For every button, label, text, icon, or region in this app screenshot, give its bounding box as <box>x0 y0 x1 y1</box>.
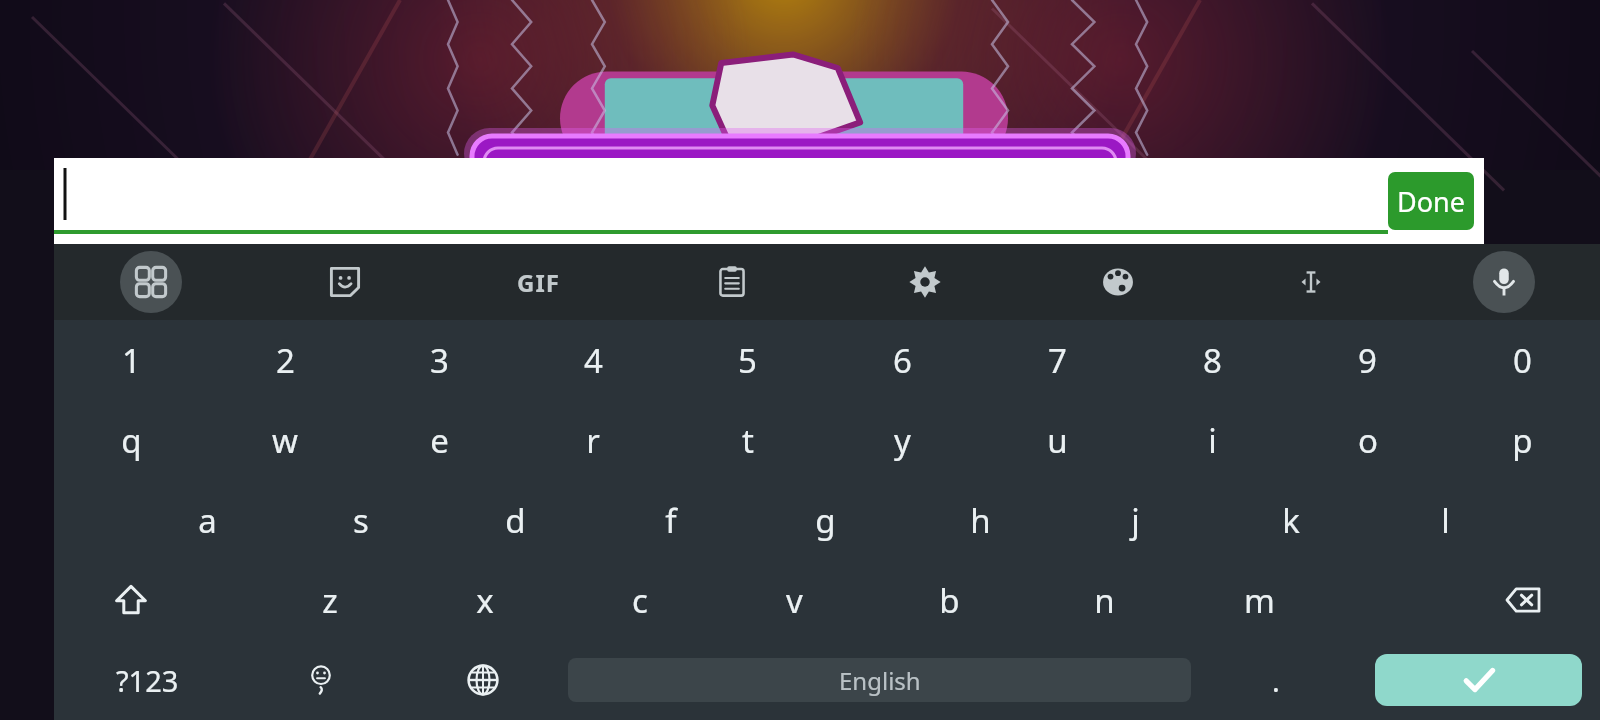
button[interactable]: 7 <box>980 320 1135 400</box>
button[interactable]: w <box>208 400 362 480</box>
button[interactable] <box>54 158 1388 244</box>
button[interactable]: s <box>284 480 438 560</box>
button[interactable]: r <box>516 400 670 480</box>
staticText: q <box>121 418 142 463</box>
button[interactable]: d <box>438 480 593 560</box>
staticText: 1 <box>122 338 141 383</box>
button[interactable]: 5 <box>670 320 825 400</box>
staticText: e <box>430 418 449 463</box>
button[interactable]: Themes <box>1021 244 1214 320</box>
staticText: r <box>586 418 600 463</box>
button[interactable]: Emoji <box>240 640 402 720</box>
staticText: GIF <box>517 266 560 299</box>
staticText: k <box>1282 498 1300 543</box>
button[interactable]: t <box>670 400 825 480</box>
staticText: 7 <box>1048 338 1067 383</box>
button[interactable]: i <box>1135 400 1290 480</box>
button[interactable]: Clipboard <box>635 244 828 320</box>
staticText: j <box>1131 498 1140 543</box>
staticText: . <box>1272 661 1280 700</box>
staticText: p <box>1512 418 1533 463</box>
staticText: d <box>505 498 526 543</box>
staticText: x <box>476 578 494 623</box>
button[interactable]: . <box>1195 640 1357 720</box>
button[interactable]: 4 <box>516 320 670 400</box>
staticText: 0 <box>1513 338 1532 383</box>
button[interactable]: ?123 <box>54 640 240 720</box>
button[interactable]: Apps <box>54 244 248 320</box>
button[interactable]: Voice input <box>1407 244 1600 320</box>
button[interactable]: 3 <box>362 320 516 400</box>
button[interactable]: Stickers <box>248 244 442 320</box>
button[interactable]: g <box>748 480 903 560</box>
button[interactable]: x <box>407 560 562 640</box>
button[interactable]: v <box>717 560 872 640</box>
button[interactable]: 8 <box>1135 320 1290 400</box>
staticText: u <box>1047 418 1068 463</box>
button[interactable]: Enter <box>1375 654 1582 706</box>
button[interactable]: f <box>593 480 748 560</box>
staticText: English <box>839 664 921 697</box>
staticText: 9 <box>1358 338 1377 383</box>
button[interactable]: English <box>568 658 1191 702</box>
staticText: t <box>742 418 754 463</box>
staticText: g <box>815 498 836 543</box>
button[interactable]: 1 <box>54 320 208 400</box>
staticText: v <box>786 578 803 623</box>
button[interactable]: c <box>562 560 717 640</box>
staticText: 2 <box>276 338 295 383</box>
staticText: b <box>939 578 960 623</box>
button[interactable]: Shift <box>54 560 208 640</box>
staticText: a <box>198 498 217 543</box>
button[interactable]: j <box>1058 480 1213 560</box>
button[interactable]: a <box>130 480 284 560</box>
button[interactable]: m <box>1182 560 1337 640</box>
staticText: Done <box>1397 183 1465 220</box>
button[interactable]: k <box>1213 480 1368 560</box>
button[interactable]: 6 <box>825 320 980 400</box>
staticText: w <box>272 418 298 463</box>
button[interactable]: o <box>1290 400 1445 480</box>
staticText: s <box>353 498 369 543</box>
button[interactable]: Text editing <box>1214 244 1407 320</box>
staticText: 8 <box>1203 338 1222 383</box>
button[interactable]: GIF <box>442 244 635 320</box>
button[interactable]: b <box>872 560 1027 640</box>
staticText: 6 <box>893 338 912 383</box>
button[interactable]: z <box>253 560 407 640</box>
staticText: l <box>1441 498 1450 543</box>
staticText: z <box>322 578 338 623</box>
button[interactable]: p <box>1445 400 1600 480</box>
button[interactable]: h <box>903 480 1058 560</box>
staticText: h <box>970 498 991 543</box>
staticText: 3 <box>430 338 449 383</box>
staticText: 4 <box>584 338 603 383</box>
staticText: c <box>632 578 648 623</box>
button[interactable]: Settings <box>828 244 1021 320</box>
button[interactable]: Switch language <box>402 640 564 720</box>
button[interactable]: Done <box>1388 172 1474 230</box>
staticText: y <box>894 418 911 463</box>
button[interactable]: 2 <box>208 320 362 400</box>
button[interactable]: Backspace <box>1445 560 1600 640</box>
button[interactable]: n <box>1027 560 1182 640</box>
staticText: i <box>1208 418 1217 463</box>
button[interactable]: l <box>1368 480 1523 560</box>
staticText: ?123 <box>116 661 179 700</box>
button[interactable]: u <box>980 400 1135 480</box>
staticText: 5 <box>738 338 757 383</box>
staticText: m <box>1244 578 1275 623</box>
button[interactable]: q <box>54 400 208 480</box>
button[interactable]: 0 <box>1445 320 1600 400</box>
button[interactable]: y <box>825 400 980 480</box>
staticText: o <box>1358 418 1378 463</box>
staticText: f <box>665 498 677 543</box>
button[interactable]: e <box>362 400 516 480</box>
button[interactable]: 9 <box>1290 320 1445 400</box>
staticText: n <box>1094 578 1115 623</box>
